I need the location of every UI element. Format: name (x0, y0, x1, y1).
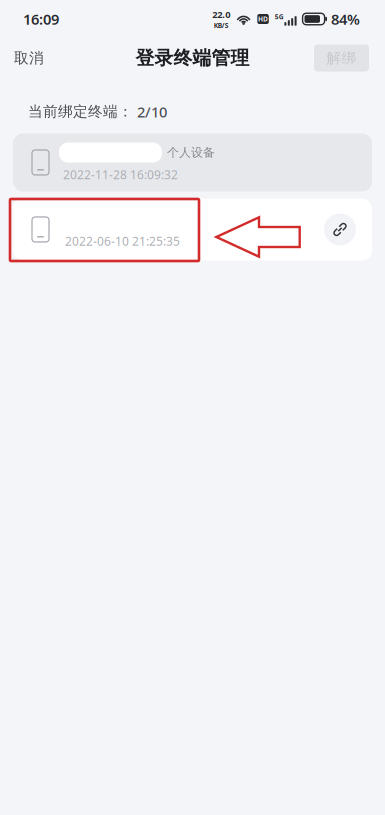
staticText: 取消 (14, 49, 44, 67)
staticText: 解绑 (326, 49, 356, 67)
button[interactable]: 个人设备 (13, 133, 372, 191)
staticText: HD (258, 15, 268, 23)
staticText: 22.0 (212, 8, 230, 20)
staticText: 当前绑定终端： (28, 103, 133, 121)
staticText: 16:09 (23, 9, 59, 29)
staticText: KB/S (214, 21, 229, 30)
staticText: 2/10 (137, 102, 167, 121)
staticText: 5G (275, 12, 284, 21)
button[interactable]: 2022-06-10 21:25:35 (13, 198, 372, 260)
staticText: 个人设备 (167, 145, 215, 160)
button[interactable]: 解绑 (314, 44, 385, 71)
button[interactable]: 解绑此设备 (324, 213, 356, 245)
staticText: 84% (331, 9, 360, 29)
staticText: 登录终端管理 (135, 46, 249, 69)
button[interactable]: 取消 (0, 38, 60, 78)
staticText: 2022-11-28 16:09:32 (63, 166, 178, 182)
staticText: 2022-06-10 21:25:35 (65, 233, 180, 249)
